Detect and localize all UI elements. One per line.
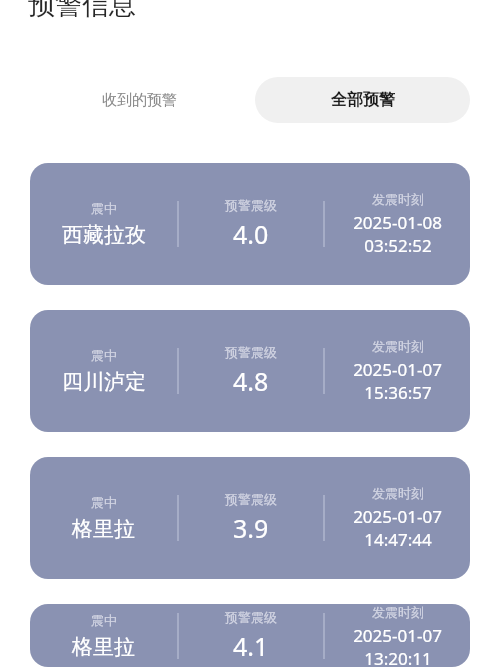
staticText: 震中: [91, 200, 117, 216]
button[interactable]: 震中: [30, 310, 470, 432]
staticText: 预警震级: [225, 197, 277, 213]
staticText: 4.8: [233, 364, 269, 398]
staticText: 四川泸定: [62, 369, 146, 395]
staticText: 西藏拉孜: [62, 222, 146, 248]
staticText: 2025-01-07: [353, 624, 442, 647]
staticText: 14:47:44: [364, 528, 432, 551]
staticText: 2025-01-07: [353, 505, 442, 528]
staticText: 预警震级: [225, 609, 277, 625]
staticText: 格里拉: [72, 516, 135, 542]
staticText: 2025-01-08: [353, 211, 442, 234]
button[interactable]: 全部预警: [255, 77, 470, 123]
button[interactable]: 震中: [30, 457, 470, 579]
staticText: 全部预警: [331, 90, 395, 110]
staticText: 震中: [91, 612, 117, 628]
staticText: 发震时刻: [372, 604, 424, 620]
staticText: 预警震级: [225, 344, 277, 360]
staticText: 03:52:52: [364, 234, 432, 257]
staticText: 震中: [91, 494, 117, 510]
staticText: 2025-01-07: [353, 358, 442, 381]
button[interactable]: 震中: [30, 604, 470, 667]
staticText: 收到的预警: [102, 91, 177, 110]
staticText: 格里拉: [72, 634, 135, 660]
staticText: 预警震级: [225, 491, 277, 507]
staticText: 13:20:11: [364, 647, 432, 667]
staticText: 4.0: [233, 217, 269, 251]
staticText: 预警信息: [28, 0, 136, 18]
staticText: 发震时刻: [372, 338, 424, 354]
staticText: 震中: [91, 347, 117, 363]
staticText: 发震时刻: [372, 485, 424, 501]
staticText: 4.1: [233, 629, 269, 663]
staticText: 3.9: [233, 511, 269, 545]
button[interactable]: 震中: [30, 163, 470, 285]
staticText: 发震时刻: [372, 191, 424, 207]
staticText: 15:36:57: [364, 381, 432, 404]
button[interactable]: 收到的预警: [47, 77, 232, 123]
